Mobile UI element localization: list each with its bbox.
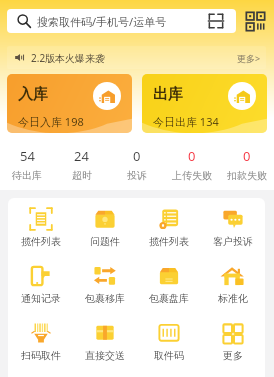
button[interactable]: 包裹盘库 [137,255,201,312]
staticText: 通知记录 [21,292,61,305]
button[interactable]: 0 [109,147,164,190]
staticText: 24 [74,147,89,165]
button[interactable]: 客户投诉 [201,198,265,255]
staticText: 2.2版本火爆来袭 [31,51,106,65]
staticText: 标准化 [218,292,248,305]
staticText: 超时 [72,169,92,182]
staticText: 上传失败 [172,169,212,182]
button[interactable]: 标准化 [201,255,265,312]
button[interactable]: 包裹移库 [73,255,137,312]
staticText: 包裹移库 [85,292,125,305]
button[interactable]: 揽件列表 [137,198,201,255]
staticText: 问题件 [90,235,120,248]
button[interactable]: 揽件列表 [8,198,73,255]
staticText: 更多> [237,52,261,64]
staticText: 包裹盘库 [149,292,189,305]
button[interactable]: 取件码 [137,312,201,369]
button[interactable]: 问题件 [73,198,137,255]
staticText: 直接交送 [85,349,125,362]
staticText: 0 [243,147,251,165]
button[interactable]: 搜索取件码/手机号/运单号 [7,9,236,33]
button[interactable]: 扫码取件 [8,312,73,369]
button[interactable]: 入库 [7,74,132,133]
staticText: 揽件列表 [21,235,61,248]
button[interactable]: My QR code [246,12,265,31]
staticText: 0 [188,147,196,165]
button[interactable]: 0 [219,147,274,190]
staticText: 待出库 [12,169,42,182]
button[interactable]: Scan barcode [207,12,225,30]
button[interactable]: 2.2版本火爆来袭 [7,46,266,69]
staticText: 更多 [223,349,243,362]
staticText: 取件码 [154,349,184,362]
button[interactable]: 直接交送 [73,312,137,369]
button[interactable]: 通知记录 [8,255,73,312]
staticText: 出库 [153,85,183,104]
staticText: 扫码取件 [21,349,61,362]
staticText: 扣款失败 [227,169,267,182]
staticText: 54 [20,147,35,165]
staticText: 投诉 [127,169,147,182]
button[interactable]: 出库 [142,74,267,133]
staticText: 揽件列表 [149,235,189,248]
staticText: 今日出库 134 [153,114,219,129]
staticText: 搜索取件码/手机号/运单号 [37,14,167,29]
button[interactable]: 24 [54,147,109,190]
staticText: 今日入库 198 [18,114,84,129]
button[interactable]: 54 [0,147,54,190]
staticText: 客户投诉 [213,235,253,248]
staticText: 0 [133,147,141,165]
button[interactable]: 更多 [201,312,265,369]
button[interactable]: 0 [164,147,219,190]
staticText: 入库 [18,85,48,104]
